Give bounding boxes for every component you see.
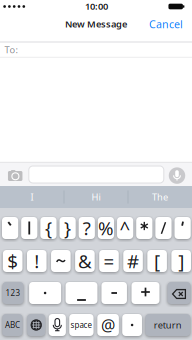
button[interactable]: 123 <box>2 281 23 304</box>
button[interactable]: = <box>99 249 119 272</box>
button[interactable]: . <box>29 281 61 304</box>
staticText: 10:00 <box>85 0 108 12</box>
staticText: % <box>98 216 114 240</box>
button[interactable]: | <box>21 216 37 239</box>
button[interactable]: ] <box>171 249 191 272</box>
staticText: The <box>152 191 168 203</box>
staticText: To: <box>4 43 18 56</box>
button[interactable]: * <box>136 216 152 239</box>
button[interactable]: Record audio <box>169 167 185 184</box>
button[interactable]: The <box>130 187 190 207</box>
button[interactable]: & <box>75 249 95 272</box>
staticText: [ <box>154 249 160 273</box>
staticText: New Message <box>65 18 127 30</box>
staticText: 123 <box>5 288 20 298</box>
button[interactable]: $ <box>3 249 22 272</box>
button[interactable]: Hi <box>66 187 126 207</box>
button[interactable]: + <box>131 281 159 304</box>
button[interactable]: Delete <box>167 281 190 304</box>
staticText: I <box>30 191 33 203</box>
staticText: ] <box>178 249 184 273</box>
staticText: ABC <box>5 320 20 330</box>
button[interactable]: - <box>101 281 127 304</box>
button[interactable]: ? <box>79 216 95 239</box>
button[interactable]: I <box>2 187 62 207</box>
button[interactable]: { <box>40 216 56 239</box>
staticText: ! <box>34 249 39 273</box>
staticText: Hi <box>91 191 100 203</box>
staticText: = <box>103 249 114 273</box>
button[interactable]: ^ <box>117 216 133 239</box>
button[interactable]: } <box>59 216 76 239</box>
button[interactable]: # <box>123 249 143 272</box>
button[interactable]: ABC <box>2 313 22 336</box>
staticText: ^ <box>120 216 131 240</box>
button[interactable]: Cancel <box>149 17 183 31</box>
staticText: # <box>127 249 139 273</box>
button[interactable]: Camera <box>8 169 23 181</box>
button[interactable]: @ <box>97 313 119 336</box>
button[interactable]: ! <box>27 249 47 272</box>
staticText: @ <box>101 314 115 336</box>
button[interactable]: ~ <box>51 249 71 272</box>
button[interactable]: _ <box>65 281 97 304</box>
button[interactable]: ' <box>174 216 191 239</box>
staticText: { <box>45 216 52 240</box>
staticText: Cancel <box>149 17 183 31</box>
button[interactable]: [ <box>147 249 167 272</box>
button[interactable]: Dictation <box>49 313 66 336</box>
button[interactable]: return <box>145 313 190 336</box>
staticText: space <box>70 320 92 330</box>
button[interactable]: ` <box>2 216 18 239</box>
staticText: $ <box>7 249 18 273</box>
staticText: } <box>64 216 71 240</box>
staticText: ? <box>83 216 91 240</box>
button[interactable]: % <box>98 216 114 239</box>
button[interactable]: Next keyboard <box>27 313 45 336</box>
staticText: return <box>154 319 182 331</box>
button[interactable]: space <box>69 313 93 336</box>
button[interactable]: / <box>155 216 172 239</box>
button[interactable]: . <box>122 313 142 336</box>
staticText: & <box>78 249 92 273</box>
